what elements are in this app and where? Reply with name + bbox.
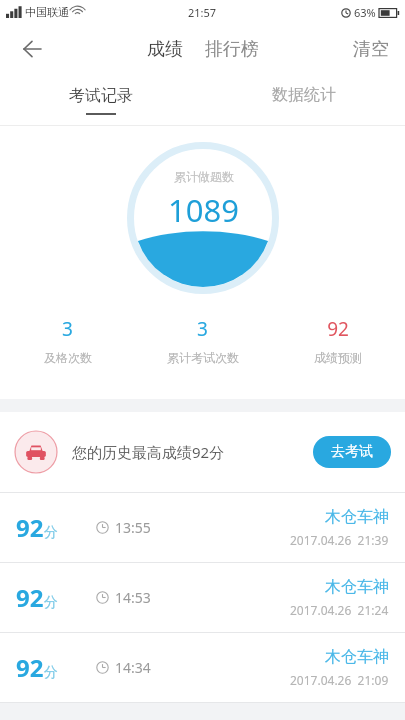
staticText: 14:53 (115, 588, 151, 607)
staticText: 考试记录 (69, 86, 133, 106)
staticText: 92 (327, 316, 349, 342)
button[interactable]: 排行榜 (205, 38, 259, 61)
staticText: 92 (16, 511, 44, 544)
button[interactable]: 92 (270, 316, 405, 365)
button[interactable]: 92 (0, 493, 405, 562)
button[interactable]: 92 (0, 633, 405, 702)
button[interactable]: 成绩 (147, 38, 183, 61)
staticText: 清空 (353, 38, 389, 61)
button[interactable]: 92 (0, 563, 405, 632)
staticText: 及格次数 (44, 350, 92, 365)
staticText: 木仓车神 (325, 577, 389, 597)
staticText: 63% (354, 5, 376, 20)
staticText: 92 (16, 581, 44, 614)
staticText: 中国联通 (25, 5, 69, 19)
staticText: 1089 (168, 189, 239, 231)
staticText: 分 (44, 664, 58, 682)
staticText: 21:57 (188, 5, 217, 20)
button[interactable]: 考试记录 (0, 74, 202, 126)
staticText: 您的历史最高成绩92分 (72, 442, 225, 462)
staticText: 木仓车神 (325, 507, 389, 527)
staticText: 成绩 (147, 38, 183, 61)
staticText: 累计考试次数 (167, 350, 239, 365)
button[interactable]: Back (10, 27, 54, 71)
button[interactable]: 3 (0, 316, 135, 365)
staticText: 去考试 (331, 443, 373, 461)
staticText: 2017.04.26 21:39 (290, 532, 389, 548)
staticText: 3 (197, 316, 208, 342)
staticText: 3 (62, 316, 73, 342)
staticText: 分 (44, 524, 58, 542)
staticText: 累计做题数 (174, 169, 234, 184)
staticText: 木仓车神 (325, 647, 389, 667)
staticText: 13:55 (115, 518, 151, 537)
button[interactable]: 数据统计 (202, 74, 405, 126)
staticText: 成绩预测 (314, 350, 362, 365)
staticText: 92 (16, 651, 44, 684)
button[interactable]: 清空 (353, 38, 389, 61)
staticText: 14:34 (115, 658, 151, 677)
button[interactable]: 3 (135, 316, 270, 365)
staticText: 2017.04.26 21:09 (290, 672, 389, 688)
staticText: 排行榜 (205, 38, 259, 61)
staticText: 2017.04.26 21:24 (290, 602, 389, 618)
staticText: 数据统计 (272, 85, 336, 105)
button[interactable]: 去考试 (313, 436, 391, 468)
staticText: 分 (44, 594, 58, 612)
